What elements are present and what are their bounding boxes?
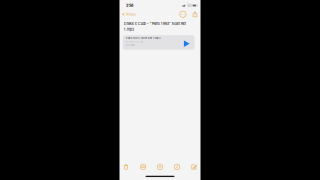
staticText: Notes: [126, 12, 136, 16]
button[interactable]: Play: [184, 35, 195, 49]
staticText: Drake x Cudi – "Paris 1993" Nuet Ref 1.m…: [124, 21, 186, 32]
button[interactable]: Add attachment: [155, 162, 164, 171]
button[interactable]: More: [178, 10, 191, 18]
button[interactable]: Share: [191, 10, 198, 18]
button[interactable]: New note: [189, 162, 198, 171]
staticText: 5G: [187, 4, 191, 7]
staticText: 2:58: [126, 3, 133, 8]
button[interactable]: Camera: [138, 162, 147, 171]
button[interactable]: Markup: [172, 162, 181, 171]
button[interactable]: Notes: [120, 10, 139, 18]
staticText: 3 min, 32 sec: [126, 40, 143, 43]
staticText: Paris 1993 Nuet Ref 1.mp3: [126, 37, 161, 40]
staticText: 6.5 MB: [126, 43, 135, 47]
button[interactable]: Delete note: [121, 162, 130, 171]
